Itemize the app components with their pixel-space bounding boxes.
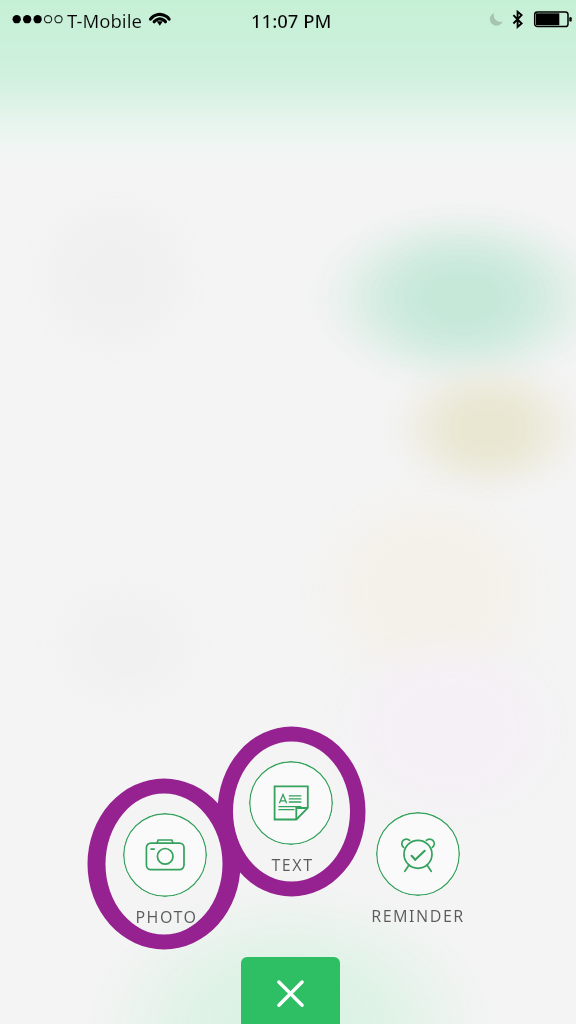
staticText: TEXT (271, 854, 314, 876)
staticText: REMINDER (371, 905, 465, 927)
staticText: 11:07 PM (251, 8, 332, 33)
button[interactable]: TEXT (249, 761, 333, 845)
button[interactable]: PHOTO (123, 813, 207, 897)
staticText: PHOTO (135, 906, 198, 928)
button[interactable]: REMINDER (376, 812, 460, 896)
button[interactable]: Close (241, 957, 340, 1024)
staticText: T-Mobile (67, 8, 142, 33)
